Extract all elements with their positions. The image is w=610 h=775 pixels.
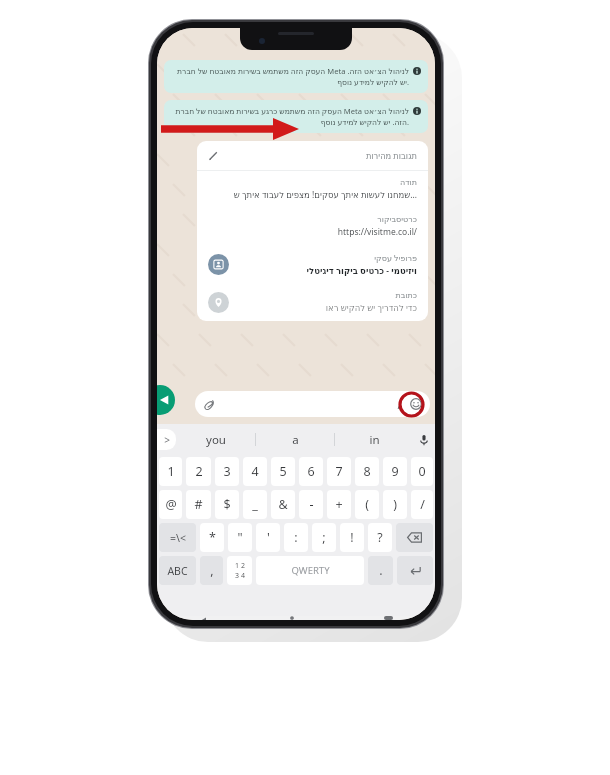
button[interactable]: =\< bbox=[159, 523, 196, 552]
button[interactable]: 6 bbox=[299, 457, 323, 486]
button[interactable]: 2 bbox=[186, 457, 211, 486]
button[interactable]: @ bbox=[159, 490, 182, 519]
staticText: פרופיל עסקי bbox=[374, 252, 417, 263]
other: Emoji bbox=[410, 398, 422, 410]
button[interactable]: 7 bbox=[327, 457, 351, 486]
staticText: 2 bbox=[195, 463, 203, 480]
staticText: 5 bbox=[279, 463, 287, 480]
button[interactable]: העסק הזה משתמש כרגע בשירות מאובטח של חבר… bbox=[164, 100, 428, 133]
staticText: כתובת bbox=[395, 291, 417, 300]
button[interactable]: " bbox=[228, 523, 252, 552]
staticText: ויזיטמי - כרטיס ביקור דיגיטלי bbox=[306, 265, 417, 277]
staticText: 4 bbox=[251, 463, 259, 480]
button[interactable]: : bbox=[284, 523, 308, 552]
staticText: ' bbox=[267, 529, 270, 546]
button[interactable]: 5 bbox=[271, 457, 295, 486]
button[interactable]: a bbox=[256, 424, 334, 455]
staticText: QWERTY bbox=[291, 564, 330, 577]
staticText: > bbox=[164, 433, 170, 447]
button[interactable]: _ bbox=[243, 490, 267, 519]
button[interactable]: 1 2 bbox=[227, 556, 252, 585]
button[interactable]: - bbox=[299, 490, 323, 519]
staticText: https://visitme.co.il/ bbox=[337, 226, 417, 238]
button[interactable]: ' bbox=[256, 523, 280, 552]
staticText: + bbox=[335, 496, 343, 513]
staticText: =\< bbox=[170, 531, 186, 545]
button[interactable]: & bbox=[271, 490, 295, 519]
button[interactable]: / bbox=[411, 490, 433, 519]
staticText: 6 bbox=[307, 463, 315, 480]
button[interactable]: ? bbox=[368, 523, 392, 552]
staticText: ABC bbox=[167, 564, 188, 578]
staticText: you bbox=[206, 432, 226, 448]
staticText: העסק הזה משתמש כרגע בשירות מאובטח של חבר… bbox=[171, 106, 409, 127]
staticText: 9 bbox=[391, 463, 399, 480]
staticText: ( bbox=[365, 496, 369, 513]
staticText: & bbox=[278, 496, 288, 513]
staticText: - bbox=[309, 496, 314, 513]
button[interactable]: כתובת bbox=[197, 284, 428, 321]
staticText: " bbox=[237, 529, 243, 546]
button[interactable]: in bbox=[335, 424, 413, 455]
button[interactable]: QWERTY bbox=[256, 556, 364, 585]
button[interactable]: העסק הזה משתמש בשירות מאובטח של חברת Met… bbox=[164, 60, 428, 93]
button[interactable]: More suggestions bbox=[157, 429, 176, 450]
button[interactable]: ( bbox=[355, 490, 379, 519]
button[interactable]: 8 bbox=[355, 457, 379, 486]
button[interactable]: 0 bbox=[411, 457, 433, 486]
staticText: @ bbox=[165, 496, 177, 513]
other: Edit bbox=[208, 150, 219, 161]
staticText: ; bbox=[322, 529, 326, 546]
button[interactable]: ; bbox=[312, 523, 336, 552]
button[interactable]: Voice input bbox=[413, 424, 435, 455]
button[interactable]: # bbox=[186, 490, 211, 519]
staticText: in bbox=[369, 432, 380, 448]
button[interactable]: you bbox=[176, 424, 255, 455]
button[interactable]: ) bbox=[383, 490, 407, 519]
button[interactable]: Back bbox=[157, 616, 249, 620]
staticText: ? bbox=[377, 529, 383, 546]
staticText: : bbox=[294, 529, 298, 546]
button[interactable]: 1 bbox=[159, 457, 182, 486]
staticText: a bbox=[292, 432, 299, 448]
button[interactable]: ! bbox=[340, 523, 364, 552]
button[interactable]: * bbox=[200, 523, 224, 552]
staticText: העסק הזה משתמש בשירות מאובטח של חברת Met… bbox=[171, 66, 409, 87]
staticText: שמחנו לעשות איתך עסקים! מצפים לעבוד איתך… bbox=[233, 189, 417, 201]
staticText: תודה bbox=[399, 178, 417, 187]
button[interactable]: Attach bbox=[195, 391, 430, 417]
staticText: ! bbox=[350, 529, 354, 546]
button[interactable]: + bbox=[327, 490, 351, 519]
button[interactable]: כרטיסביקור bbox=[197, 208, 428, 245]
staticText: 0 bbox=[418, 463, 426, 480]
button[interactable]: Edit bbox=[197, 141, 428, 170]
staticText: 1 bbox=[167, 463, 175, 480]
staticText: . bbox=[379, 562, 383, 579]
button[interactable]: 4 bbox=[243, 457, 267, 486]
staticText: _ bbox=[252, 496, 258, 513]
button[interactable]: Enter bbox=[397, 556, 433, 585]
button[interactable]: $ bbox=[215, 490, 239, 519]
staticText: 8 bbox=[363, 463, 371, 480]
staticText: , bbox=[210, 562, 214, 579]
button[interactable]: . bbox=[368, 556, 393, 585]
button[interactable]: 9 bbox=[383, 457, 407, 486]
button[interactable]: Backspace bbox=[396, 523, 433, 552]
button[interactable]: , bbox=[200, 556, 223, 585]
staticText: / bbox=[397, 397, 402, 412]
staticText: $ bbox=[223, 496, 231, 513]
button[interactable]: פרופיל עסקי bbox=[197, 245, 428, 284]
staticText: # bbox=[194, 496, 203, 513]
button[interactable]: Recents bbox=[342, 616, 435, 620]
staticText: כדי להדריך יש להקיש ראו bbox=[325, 302, 417, 314]
button[interactable]: Home bbox=[249, 616, 342, 620]
button[interactable]: 3 bbox=[215, 457, 239, 486]
staticText: 7 bbox=[335, 463, 343, 480]
button[interactable]: תודה bbox=[197, 171, 428, 208]
button[interactable]: Send bbox=[157, 385, 175, 415]
staticText: 1 2 bbox=[235, 561, 245, 571]
staticText: ) bbox=[393, 496, 397, 513]
button[interactable]: ABC bbox=[159, 556, 196, 585]
staticText: 3 bbox=[223, 463, 231, 480]
staticText: תגובות מהירות bbox=[365, 150, 417, 161]
